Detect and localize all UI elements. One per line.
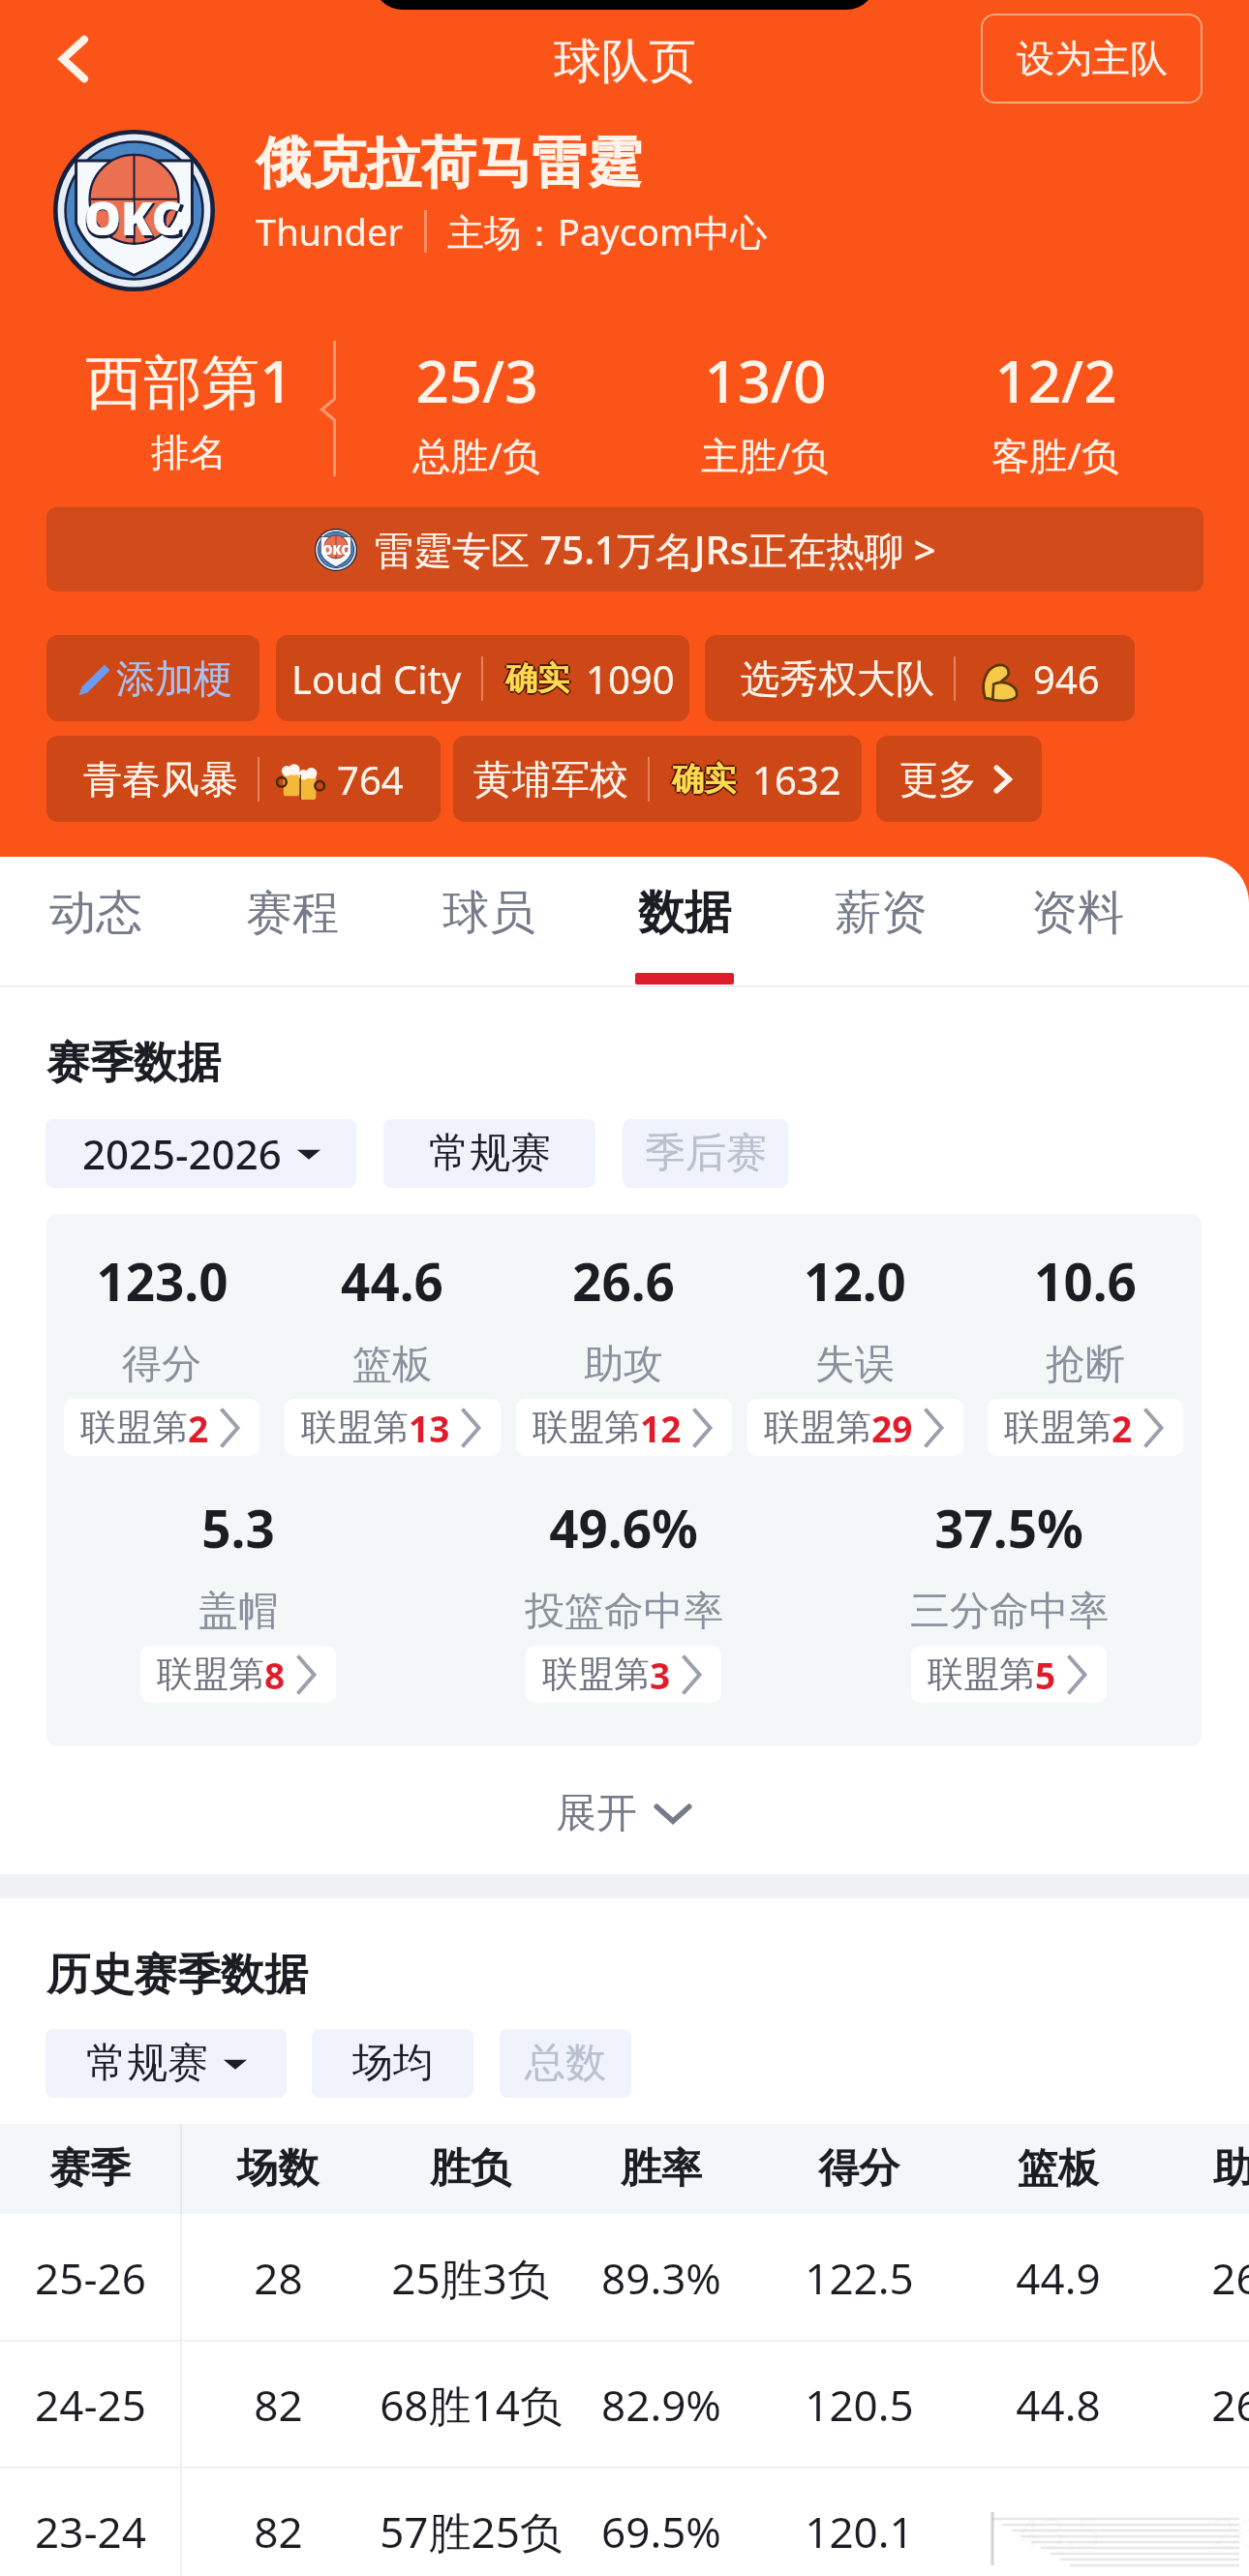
staticText: 确实: [672, 759, 736, 800]
staticText: 57胜25负: [380, 2502, 563, 2561]
staticText: 胜负: [430, 2143, 511, 2195]
button[interactable]: Back: [29, 15, 118, 104]
button[interactable]: 联盟第: [988, 1399, 1183, 1456]
staticText: 26.6: [572, 1246, 675, 1316]
staticText: 29: [871, 1404, 913, 1452]
button[interactable]: 添加梗: [46, 635, 259, 721]
staticText: 确实: [670, 759, 734, 800]
staticText: 联盟第: [928, 1652, 1035, 1697]
button[interactable]: 联盟第: [911, 1646, 1107, 1703]
staticText: 联盟第: [1004, 1405, 1112, 1450]
staticText: 49.6%: [549, 1493, 698, 1562]
staticText: 展开: [556, 1788, 637, 1839]
button[interactable]: 选秀权大队: [705, 635, 1135, 721]
button[interactable]: 更多: [876, 736, 1042, 822]
button[interactable]: 常规赛: [46, 2029, 287, 2098]
staticText: 三分命中率: [910, 1587, 1109, 1637]
button[interactable]: 2025-2026: [46, 1119, 356, 1188]
staticText: 123.0: [96, 1246, 228, 1316]
staticText: 更多: [899, 755, 977, 803]
button[interactable]: 联盟第: [285, 1399, 501, 1456]
button[interactable]: 联盟第: [747, 1399, 963, 1456]
staticText: 68胜14负: [380, 2376, 563, 2434]
staticText: 主胜/负: [701, 429, 829, 480]
button[interactable]: OKC: [46, 507, 1203, 591]
staticText: 25胜3负: [391, 2249, 550, 2307]
staticText: 场均: [352, 2038, 434, 2089]
button[interactable]: 薪资: [784, 857, 978, 985]
staticText: 2: [188, 1404, 209, 1452]
staticText: OKC: [84, 186, 182, 249]
button[interactable]: 展开: [0, 1778, 1249, 1848]
staticText: 24-25: [35, 2376, 146, 2434]
staticText: 946: [1033, 652, 1100, 705]
staticText: 82: [254, 2376, 303, 2434]
staticText: 8: [264, 1651, 286, 1699]
staticText: 历史赛季数据: [46, 1948, 308, 2003]
staticText: 联盟第: [301, 1405, 409, 1450]
button[interactable]: 数据: [588, 857, 781, 985]
button[interactable]: 联盟第: [526, 1646, 721, 1703]
staticText: 28: [254, 2249, 303, 2307]
staticText: 助攻: [584, 1340, 663, 1390]
staticText: 联盟第: [533, 1405, 640, 1450]
staticText: 添加梗: [116, 654, 232, 703]
button[interactable]: 常规赛: [383, 1119, 595, 1188]
staticText: 球队页: [554, 32, 696, 92]
staticText: 黄埔军校: [473, 755, 628, 803]
staticText: 数据: [638, 884, 731, 942]
staticText: 得分: [122, 1340, 201, 1390]
staticText: 82: [254, 2502, 303, 2561]
staticText: 赛季数据: [46, 1036, 221, 1091]
staticText: 10.6: [1034, 1246, 1137, 1316]
staticText: 1090: [586, 652, 675, 705]
staticText: 主场：Paycom中心: [447, 206, 768, 257]
staticText: 25/3: [415, 341, 538, 420]
button[interactable]: 联盟第: [516, 1399, 732, 1456]
button[interactable]: 设为主队: [981, 14, 1203, 104]
staticText: 44.9: [1016, 2249, 1101, 2307]
staticText: 确实: [672, 757, 736, 798]
button[interactable]: 总数: [500, 2029, 631, 2098]
staticText: 排名: [151, 429, 227, 476]
staticText: 俄克拉荷马雷霆: [256, 129, 642, 198]
staticText: 37.5%: [934, 1493, 1083, 1562]
button[interactable]: 场均: [312, 2029, 473, 2098]
button[interactable]: 联盟第: [140, 1646, 336, 1703]
button[interactable]: 青春风暴: [46, 736, 441, 822]
button[interactable]: 动态: [0, 857, 193, 985]
button[interactable]: 黄埔军校: [453, 736, 862, 822]
button[interactable]: 资料: [981, 857, 1174, 985]
staticText: 5.3: [201, 1493, 275, 1562]
staticText: 确实: [507, 658, 571, 699]
button[interactable]: 赛程: [196, 857, 389, 985]
staticText: 抢断: [1046, 1340, 1125, 1390]
staticText: 12/2: [994, 341, 1117, 420]
staticText: 26.5: [1211, 2376, 1249, 2434]
staticText: 69.5%: [601, 2502, 721, 2561]
staticText: 13/0: [704, 341, 827, 420]
staticText: 26.4: [1211, 2249, 1249, 2307]
staticText: 120.5: [805, 2376, 914, 2434]
staticText: 23-24: [35, 2502, 146, 2561]
button[interactable]: Loud City: [276, 635, 689, 721]
staticText: 篮板: [352, 1340, 432, 1390]
staticText: 2025-2026: [82, 1126, 282, 1181]
staticText: 西部第1: [85, 341, 293, 420]
staticText: 26.8: [1211, 2502, 1249, 2561]
staticText: 44.8: [1016, 2376, 1101, 2434]
staticText: 确实: [503, 658, 567, 699]
staticText: Thunder: [256, 206, 404, 257]
staticText: 89.3%: [601, 2249, 721, 2307]
staticText: 联盟第: [764, 1405, 871, 1450]
staticText: 确实: [505, 656, 569, 697]
button[interactable]: 季后赛: [623, 1119, 788, 1188]
staticText: 总数: [525, 2038, 606, 2089]
staticText: 确实: [674, 759, 738, 800]
staticText: 确实: [505, 660, 569, 701]
button[interactable]: 球员: [392, 857, 586, 985]
staticText: 联盟第: [80, 1405, 188, 1450]
staticText: 赛季: [49, 2143, 131, 2195]
button[interactable]: 联盟第: [64, 1399, 259, 1456]
staticText: 得分: [818, 2143, 899, 2195]
